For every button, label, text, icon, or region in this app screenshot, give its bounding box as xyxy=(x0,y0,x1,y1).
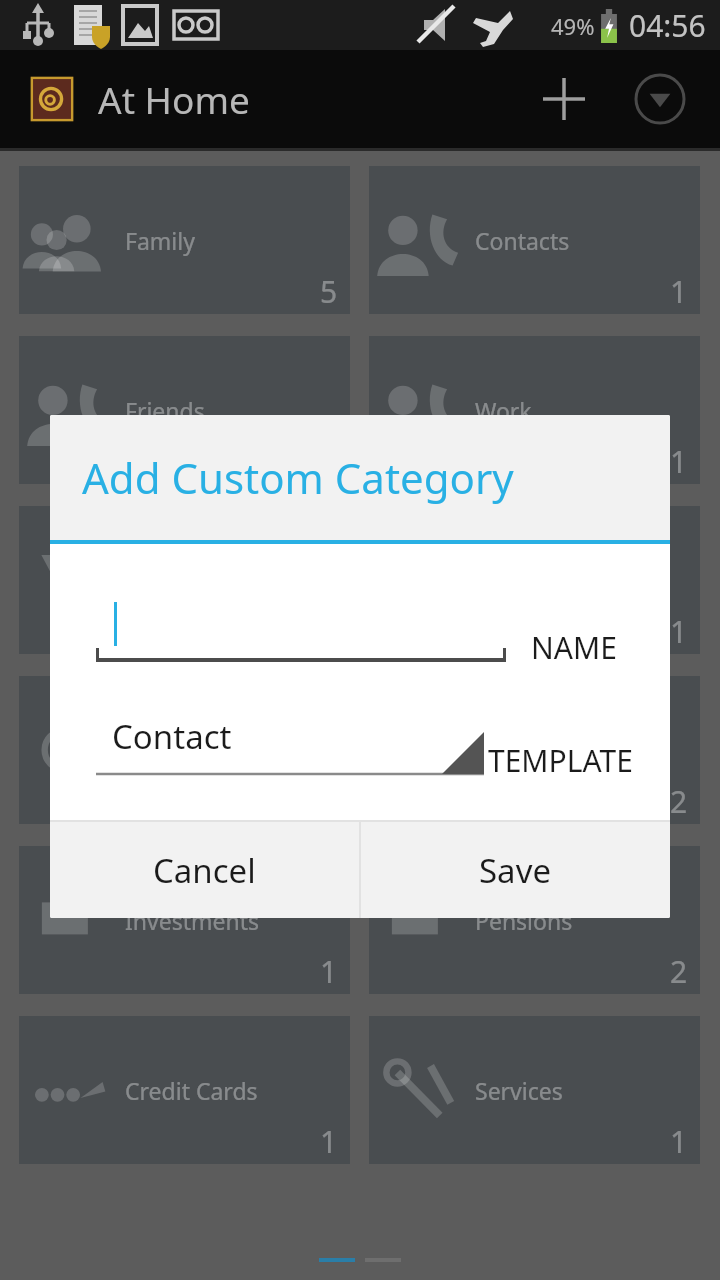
button[interactable]: Add xyxy=(526,61,602,137)
staticText: 49% xyxy=(551,11,595,41)
staticText: 1 xyxy=(320,1121,338,1162)
button[interactable] xyxy=(96,588,506,662)
button[interactable]: More options xyxy=(622,61,698,137)
staticText: Cancel xyxy=(153,848,256,893)
staticText: Contacts xyxy=(475,225,570,256)
button[interactable]: Credit Cards xyxy=(19,1016,350,1164)
staticText: Loans xyxy=(125,735,190,766)
staticText: Family xyxy=(125,225,195,256)
staticText: 1 xyxy=(320,951,338,992)
button[interactable]: Pensions xyxy=(369,846,700,994)
button[interactable]: Bank xyxy=(19,506,350,654)
button[interactable]: Cancel xyxy=(50,822,359,918)
button[interactable]: Investments xyxy=(19,846,350,994)
staticText: Pensions xyxy=(475,905,573,936)
staticText: 1 xyxy=(320,441,338,482)
staticText: 2 xyxy=(670,951,688,992)
button[interactable]: Work xyxy=(369,336,700,484)
staticText: Add Custom Category xyxy=(82,449,514,506)
staticText: 1 xyxy=(670,611,688,652)
staticText: Services xyxy=(475,1075,563,1106)
staticText: TEMPLATE xyxy=(488,740,633,781)
staticText: Investments xyxy=(125,905,259,936)
button[interactable]: Contact xyxy=(96,708,484,776)
staticText: Friends xyxy=(125,395,205,426)
staticText: 1 xyxy=(670,271,688,312)
button[interactable]: Save xyxy=(361,822,670,918)
staticText: 5 xyxy=(320,271,338,312)
button[interactable]: Services xyxy=(369,1016,700,1164)
button[interactable]: Mortgage xyxy=(369,676,700,824)
button[interactable]: Contacts xyxy=(369,166,700,314)
staticText: Credit Cards xyxy=(125,1075,258,1106)
staticText: Save xyxy=(479,848,552,893)
staticText: Contact xyxy=(112,714,232,759)
button[interactable]: Insurance xyxy=(369,506,700,654)
staticText: 1 xyxy=(670,1121,688,1162)
staticText: Mortgage xyxy=(475,735,582,766)
staticText: Work xyxy=(475,395,532,426)
button[interactable]: Family xyxy=(19,166,350,314)
button[interactable]: Friends xyxy=(19,336,350,484)
staticText: 1 xyxy=(320,781,338,822)
button[interactable]: Loans xyxy=(19,676,350,824)
staticText: 1 xyxy=(670,441,688,482)
staticText: NAME xyxy=(531,627,617,668)
staticText: At Home xyxy=(98,74,250,124)
staticText: 2 xyxy=(670,781,688,822)
staticText: 04:56 xyxy=(629,5,706,46)
